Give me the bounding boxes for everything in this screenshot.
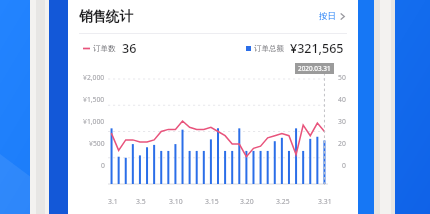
- staticText: 3.1: [108, 197, 118, 206]
- staticText: 3.31: [318, 197, 332, 206]
- staticText: 3.20: [240, 197, 254, 206]
- staticText: ¥321,565: [290, 40, 344, 57]
- staticText: 20: [338, 139, 346, 148]
- staticText: 按日: [319, 11, 336, 22]
- staticText: 3.5: [136, 197, 146, 206]
- staticText: ¥2,000: [83, 73, 105, 82]
- other: Change period: [338, 12, 347, 21]
- staticText: 3.10: [169, 197, 183, 206]
- staticText: 销售统计: [79, 8, 133, 25]
- button[interactable]: 按日: [316, 7, 350, 26]
- staticText: 订单数: [93, 44, 116, 53]
- staticText: 40: [338, 95, 346, 104]
- staticText: 订单总额: [254, 44, 284, 53]
- staticText: 0: [101, 161, 105, 170]
- staticText: 3.15: [205, 197, 219, 206]
- staticText: ¥500: [89, 139, 105, 148]
- staticText: 0: [342, 161, 346, 170]
- staticText: 36: [122, 40, 137, 57]
- staticText: ¥1,500: [83, 95, 105, 104]
- staticText: 3.25: [276, 197, 290, 206]
- staticText: 2020.03.31: [298, 64, 331, 73]
- staticText: ¥1,000: [83, 117, 105, 126]
- staticText: 30: [338, 117, 346, 126]
- staticText: 50: [338, 73, 346, 82]
